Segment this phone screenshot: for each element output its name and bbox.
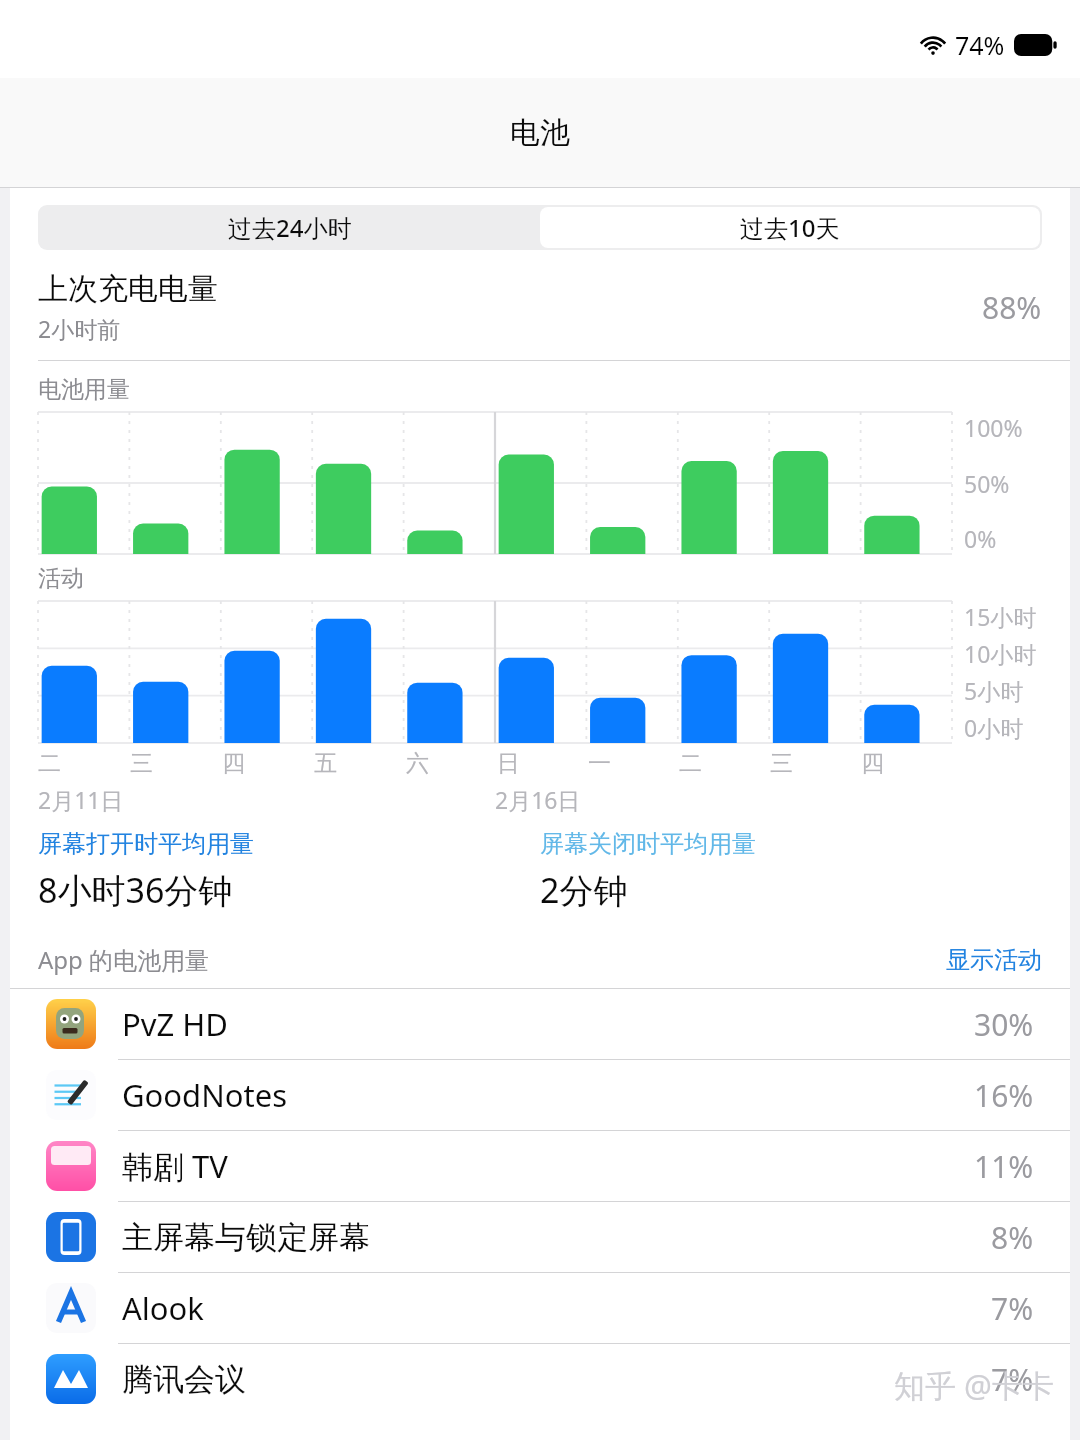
staticText: 四 xyxy=(222,749,245,778)
other: Battery xyxy=(1014,34,1058,56)
staticText: 16% xyxy=(974,1075,1034,1116)
staticText: 韩剧 TV xyxy=(122,1145,974,1187)
button[interactable]: 韩剧 TV xyxy=(10,1131,1070,1201)
staticText: PvZ HD xyxy=(122,1003,974,1045)
button[interactable]: PvZ HD xyxy=(10,989,1070,1059)
staticText: 显示活动 xyxy=(946,945,1042,975)
staticText: 50% xyxy=(964,468,1010,499)
staticText: 腾讯会议 xyxy=(122,1360,991,1399)
staticText: 15小时 xyxy=(964,601,1037,632)
staticText: 电池 xyxy=(510,114,570,152)
staticText: 五 xyxy=(314,749,337,778)
staticText: 8小时36分钟 xyxy=(38,867,233,913)
button[interactable]: Alook xyxy=(10,1273,1070,1343)
staticText: 过去24小时 xyxy=(228,211,352,244)
staticText: 100% xyxy=(964,412,1023,443)
staticText: 屏幕关闭时平均用量 xyxy=(540,829,756,859)
button[interactable]: 主屏幕与锁定屏幕 xyxy=(10,1202,1070,1272)
staticText: 三 xyxy=(770,749,793,778)
staticText: 活动 xyxy=(38,564,84,593)
button[interactable]: 显示活动 xyxy=(946,945,1042,975)
staticText: 二 xyxy=(38,749,61,778)
staticText: 主屏幕与锁定屏幕 xyxy=(122,1218,991,1257)
staticText: 三 xyxy=(130,749,153,778)
staticText: 六 xyxy=(406,749,429,778)
staticText: 7% xyxy=(991,1288,1034,1329)
staticText: 电池用量 xyxy=(38,375,130,404)
staticText: 知乎 @卡卡 xyxy=(894,1364,1054,1406)
staticText: 日 xyxy=(497,749,520,778)
staticText: 2月16日 xyxy=(495,784,581,815)
staticText: 屏幕打开时平均用量 xyxy=(38,829,254,859)
button[interactable]: 屏幕打开时平均用量 xyxy=(38,829,540,913)
staticText: 2小时前 xyxy=(38,313,121,344)
button[interactable]: 过去10天 xyxy=(540,207,1040,248)
button[interactable]: 上次充电电量 xyxy=(38,270,1042,344)
staticText: 一 xyxy=(588,749,611,778)
staticText: 11% xyxy=(974,1146,1034,1187)
staticText: 上次充电电量 xyxy=(38,270,218,308)
staticText: 0% xyxy=(964,523,997,554)
staticText: 0小时 xyxy=(964,712,1024,743)
staticText: 2分钟 xyxy=(540,867,628,913)
button[interactable]: GoodNotes xyxy=(10,1060,1070,1130)
staticText: 74% xyxy=(955,28,1005,62)
staticText: 过去10天 xyxy=(740,211,840,244)
button[interactable]: 腾讯会议 xyxy=(10,1344,1070,1414)
staticText: 8% xyxy=(991,1217,1034,1258)
staticText: 30% xyxy=(974,1004,1034,1045)
staticText: 四 xyxy=(861,749,884,778)
staticText: 88% xyxy=(982,287,1042,328)
staticText: 2月11日 xyxy=(38,784,124,815)
staticText: 5小时 xyxy=(964,675,1024,706)
staticText: 7% xyxy=(991,1359,1034,1400)
other: Wi-Fi xyxy=(919,35,947,56)
staticText: 10小时 xyxy=(964,638,1037,669)
button[interactable]: 过去24小时 xyxy=(40,207,540,248)
staticText: Alook xyxy=(122,1287,991,1329)
button[interactable]: 屏幕关闭时平均用量 xyxy=(540,829,1042,913)
staticText: 二 xyxy=(679,749,702,778)
staticText: GoodNotes xyxy=(122,1074,974,1116)
staticText: App 的电池用量 xyxy=(38,943,946,976)
